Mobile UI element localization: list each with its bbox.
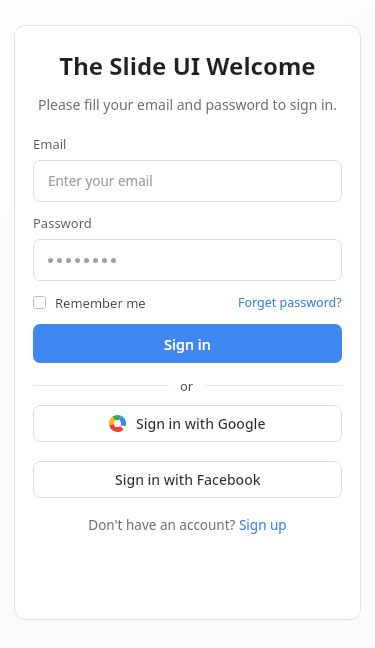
other: Google: [109, 415, 126, 432]
staticText: The Slide UI Welcome: [33, 49, 342, 82]
staticText: or: [180, 377, 194, 393]
staticText: Forget password?: [238, 294, 342, 311]
staticText: Sign in with Google: [136, 414, 266, 433]
button[interactable]: Forget password?: [238, 294, 342, 311]
button[interactable]: Sign in: [33, 324, 342, 363]
button[interactable]: [33, 239, 342, 281]
staticText: Email: [33, 135, 67, 153]
staticText: Remember me: [55, 294, 146, 310]
button[interactable]: Remember me: [33, 292, 146, 312]
staticText: Password: [33, 214, 92, 232]
staticText: Enter your email: [48, 172, 153, 190]
staticText: Sign in: [164, 334, 211, 354]
button[interactable]: Enter your email: [33, 160, 342, 202]
staticText: Please fill your email and password to s…: [33, 95, 342, 114]
button[interactable]: Don't have an account? Sign up: [88, 516, 287, 534]
button[interactable]: Sign in with Facebook: [33, 461, 342, 498]
staticText: Sign in with Facebook: [115, 470, 261, 489]
staticText: Don't have an account? Sign up: [88, 516, 287, 534]
button[interactable]: Sign in with Google: [33, 405, 342, 442]
